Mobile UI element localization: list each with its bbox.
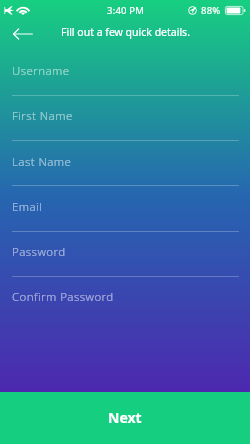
button[interactable]: Back bbox=[3, 20, 43, 50]
staticText: Next bbox=[108, 408, 142, 427]
button[interactable]: Next bbox=[0, 392, 250, 444]
staticText: Email bbox=[12, 199, 43, 215]
staticText: Username bbox=[12, 63, 70, 79]
button[interactable]: Last Name bbox=[0, 141, 250, 186]
staticText: First Name bbox=[12, 108, 73, 124]
button[interactable]: Password bbox=[0, 231, 250, 276]
staticText: 3:40 PM bbox=[107, 4, 145, 17]
staticText: 88% bbox=[201, 4, 221, 17]
staticText: Fill out a few quick details. bbox=[61, 25, 190, 39]
button[interactable]: Email bbox=[0, 186, 250, 231]
staticText: Confirm Password bbox=[12, 289, 114, 305]
button[interactable]: Username bbox=[0, 50, 250, 95]
button[interactable]: Confirm Password bbox=[0, 276, 250, 321]
staticText: Password bbox=[12, 244, 66, 260]
staticText: Last Name bbox=[12, 154, 72, 170]
button[interactable]: First Name bbox=[0, 95, 250, 140]
